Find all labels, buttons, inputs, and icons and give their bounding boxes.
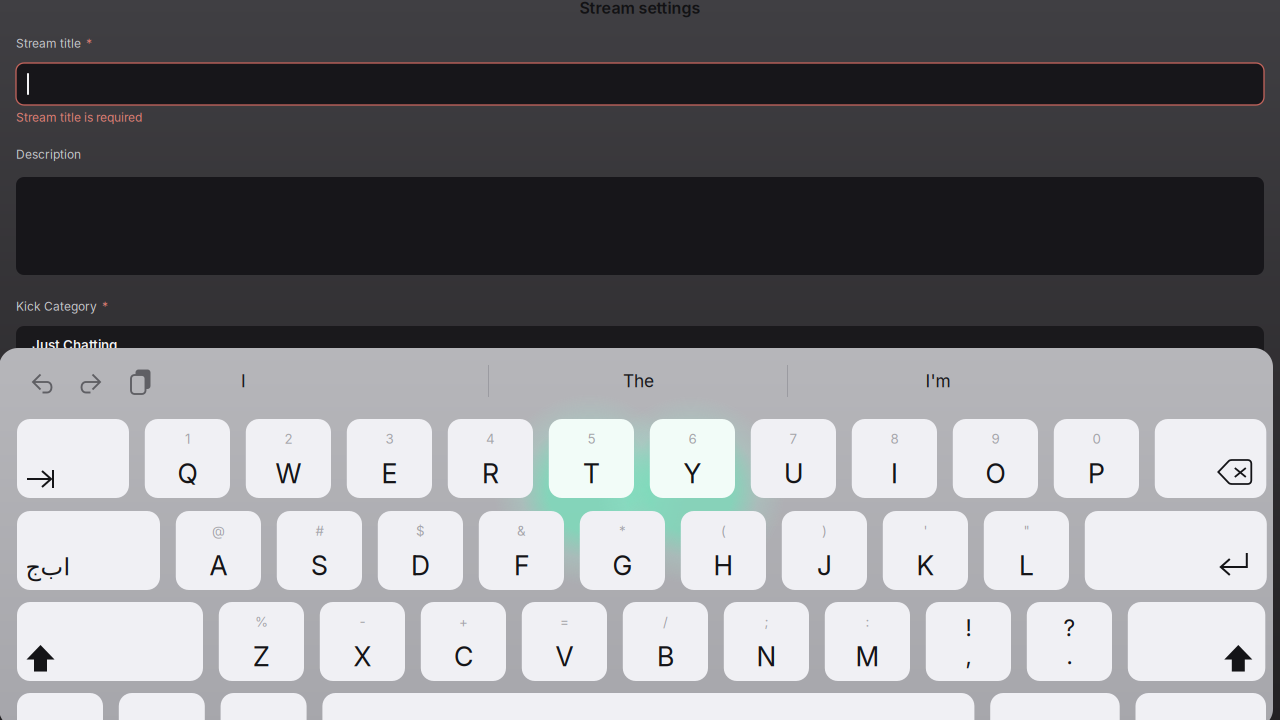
button[interactable]: 1 (145, 419, 230, 498)
button[interactable]: & (479, 511, 564, 590)
staticText: : (865, 614, 869, 630)
button[interactable]: @ (176, 511, 261, 590)
staticText: Stream settings (579, 0, 700, 18)
staticText: Z (253, 640, 270, 673)
button[interactable]: I (0, 357, 488, 405)
staticText: * (86, 36, 92, 50)
staticText: 7 (789, 431, 797, 447)
staticText: & (517, 523, 526, 539)
staticText: T (583, 457, 600, 490)
button[interactable]: Paste (116, 359, 166, 405)
staticText: L (1019, 549, 1034, 582)
staticText: H (713, 549, 733, 582)
staticText: 9 (991, 431, 999, 447)
button[interactable]: Tab (17, 419, 129, 498)
staticText: ) (822, 523, 827, 539)
staticText: Kick Category (16, 299, 97, 313)
staticText: V (555, 640, 573, 673)
button[interactable]: Delete (1155, 419, 1266, 498)
staticText: F (514, 549, 529, 582)
button[interactable]: The (489, 357, 788, 405)
button[interactable]: 5 (549, 419, 634, 498)
button[interactable]: Numbers (990, 693, 1120, 720)
staticText: G (612, 549, 632, 582)
staticText: = (560, 614, 569, 630)
staticText: B (657, 640, 674, 673)
button[interactable]: ' (883, 511, 968, 590)
staticText: 8 (890, 431, 898, 447)
staticText: E (381, 457, 397, 490)
staticText: ; (764, 614, 768, 630)
button[interactable]: Return (1085, 511, 1267, 590)
button[interactable]: $ (378, 511, 463, 590)
button[interactable]: ( (681, 511, 766, 590)
button[interactable]: " (984, 511, 1069, 590)
staticText: K (916, 549, 934, 582)
staticText: ( (721, 523, 726, 539)
button[interactable]: Numbers (17, 693, 103, 720)
staticText: $ (416, 523, 425, 539)
staticText: + (459, 614, 468, 630)
button[interactable]: ? (1027, 602, 1112, 681)
button[interactable]: # (277, 511, 362, 590)
button[interactable]: Space (322, 693, 974, 720)
staticText: W (275, 457, 301, 490)
button[interactable]: 4 (448, 419, 533, 498)
staticText: M (855, 640, 879, 673)
button[interactable]: Hide keyboard (1135, 693, 1266, 720)
button[interactable]: - (320, 602, 405, 681)
button[interactable]: 2 (246, 419, 331, 498)
button[interactable]: ; (724, 602, 809, 681)
staticText: U (784, 457, 803, 490)
staticText: Description (16, 147, 81, 161)
button[interactable]: 3 (347, 419, 432, 498)
staticText: / (663, 614, 668, 630)
button[interactable]: / (623, 602, 708, 681)
button[interactable]: * (580, 511, 665, 590)
button[interactable]: Undo (17, 360, 67, 406)
button[interactable]: 7 (751, 419, 836, 498)
staticText: O (985, 457, 1005, 490)
staticText: , (965, 642, 971, 670)
button[interactable]: ! (926, 602, 1011, 681)
button[interactable]: I'm (788, 357, 1088, 405)
staticText: 3 (385, 431, 393, 447)
staticText: Q (177, 457, 197, 490)
button[interactable]: Emoji (119, 693, 205, 720)
button[interactable]: : (825, 602, 910, 681)
staticText: @ (212, 523, 225, 539)
staticText: Stream title (16, 36, 81, 50)
staticText: - (359, 614, 365, 630)
staticText: D (411, 549, 430, 582)
button[interactable]: % (219, 602, 304, 681)
staticText: Just Chatting (32, 337, 117, 353)
staticText: P (1088, 457, 1105, 490)
button[interactable]: Next keyboard (221, 693, 307, 720)
staticText: ا‌ب‌ج (25, 553, 70, 581)
button[interactable]: Arabic keyboard (17, 511, 160, 590)
staticText: * (619, 523, 626, 539)
staticText: 4 (486, 431, 495, 447)
button[interactable]: Shift (17, 602, 203, 681)
staticText: X (353, 640, 371, 673)
staticText: N (756, 640, 776, 673)
staticText: R (482, 457, 499, 490)
staticText: Y (683, 457, 701, 490)
staticText: The (623, 370, 654, 391)
staticText: I (891, 457, 898, 490)
button[interactable]: 6 (650, 419, 735, 498)
staticText: ! (965, 614, 971, 642)
button[interactable]: 0 (1054, 419, 1139, 498)
button[interactable]: 9 (953, 419, 1038, 498)
button[interactable]: Redo (66, 360, 116, 406)
button[interactable]: = (522, 602, 607, 681)
staticText: " (1023, 523, 1029, 539)
button[interactable]: + (421, 602, 506, 681)
button[interactable]: Shift (1128, 602, 1265, 681)
button[interactable]: 8 (852, 419, 937, 498)
staticText: Stream title is required (16, 110, 142, 124)
staticText: S (311, 549, 328, 582)
staticText: 0 (1092, 431, 1100, 447)
button[interactable]: ) (782, 511, 867, 590)
staticText: 5 (587, 431, 595, 447)
